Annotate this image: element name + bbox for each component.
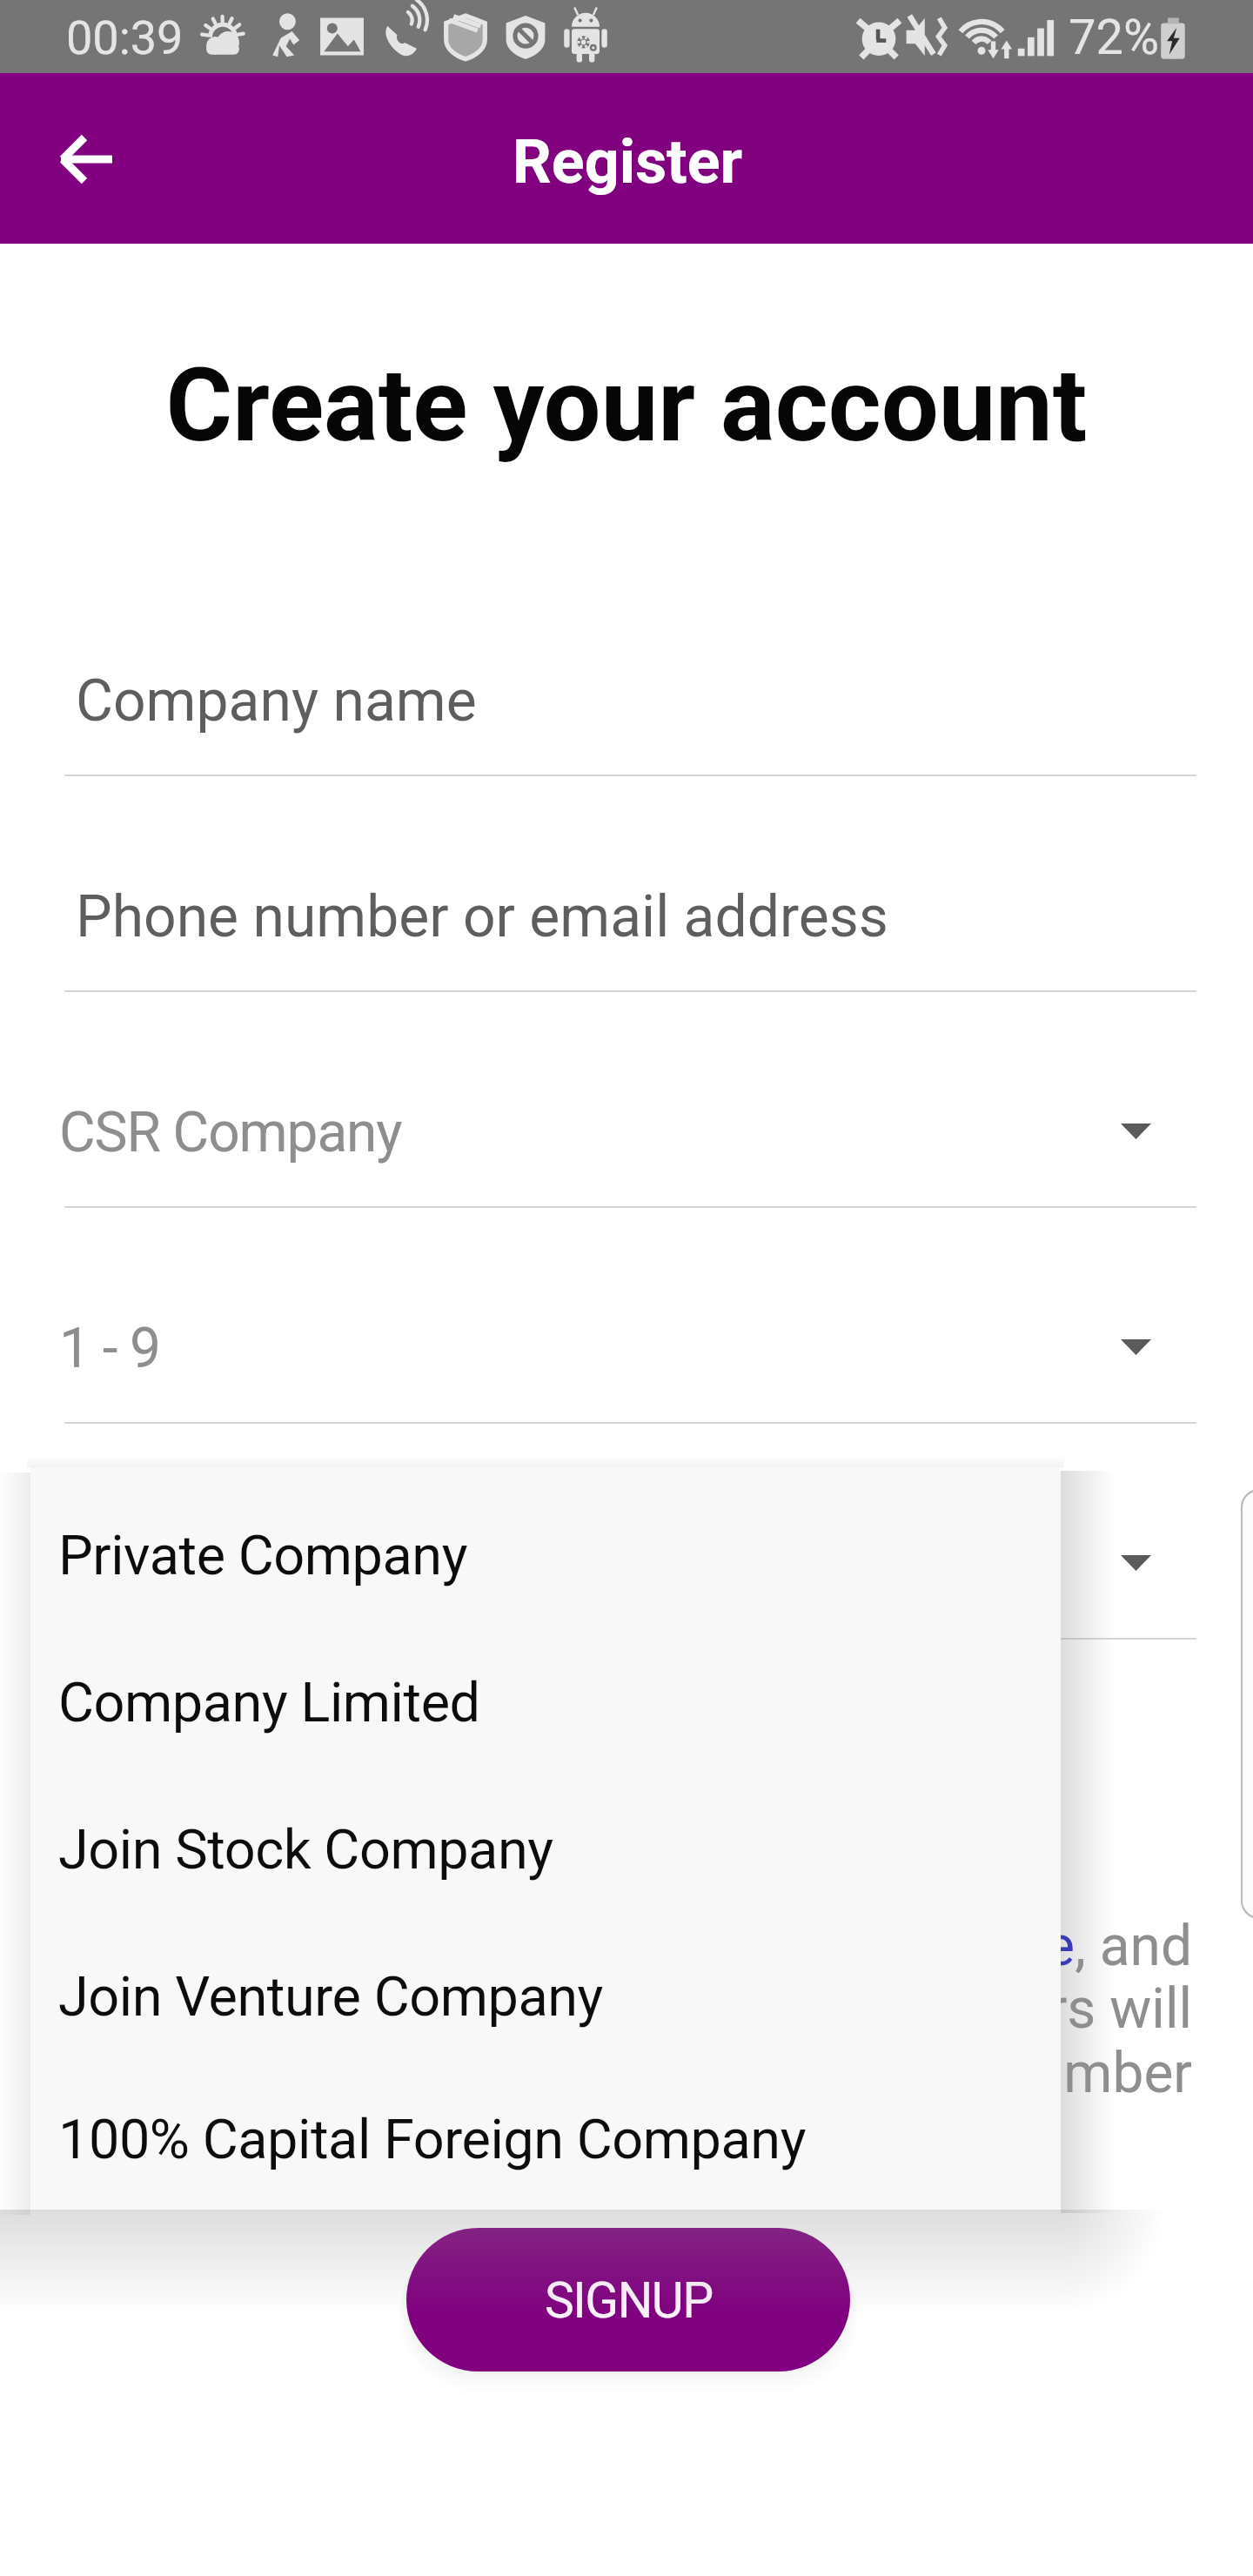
button[interactable]: SIGNUP <box>406 2228 850 2371</box>
staticText: Private Company <box>58 1524 468 1588</box>
staticText: 00:39 <box>66 10 184 65</box>
staticText: 72% <box>1069 9 1159 66</box>
staticText: Create your account <box>0 345 1253 465</box>
button[interactable]: Company name <box>0 618 1253 814</box>
button[interactable]: Back <box>48 119 128 199</box>
staticText: find you by email or phone number <box>0 2041 1192 2106</box>
staticText: 1 - 9 <box>59 1316 160 1381</box>
staticText: Register <box>513 126 743 198</box>
staticText: Phone number or email address <box>76 883 888 950</box>
staticText: Privacy Policy. Others will <box>0 1976 1192 2042</box>
staticText: CSR Company <box>59 1100 402 1165</box>
staticText: Join Stock Company <box>58 1818 553 1882</box>
button[interactable]: Phone number or email address <box>0 834 1253 1030</box>
button[interactable]: CSR Company <box>0 1050 1253 1245</box>
staticText: SIGNUP <box>545 2271 713 2330</box>
button[interactable]: Join Venture Company <box>30 1923 1061 2070</box>
button[interactable]: 100% Capital Foreign Company <box>30 2070 1061 2210</box>
staticText: Terms of Service, and <box>0 1914 1192 1979</box>
button[interactable]: 1 - 9 <box>0 1265 1253 1461</box>
button[interactable]: Company Limited <box>30 1629 1061 1776</box>
staticText: 100% Capital Foreign Company <box>58 2108 807 2172</box>
button[interactable]: Private Company <box>30 1482 1061 1629</box>
button[interactable]: Join Stock Company <box>30 1776 1061 1923</box>
button[interactable]: Company type <box>0 1481 1253 1677</box>
staticText: Join Venture Company <box>58 1965 603 2029</box>
staticText: Company Limited <box>58 1671 480 1735</box>
staticText: Company name <box>76 667 477 735</box>
